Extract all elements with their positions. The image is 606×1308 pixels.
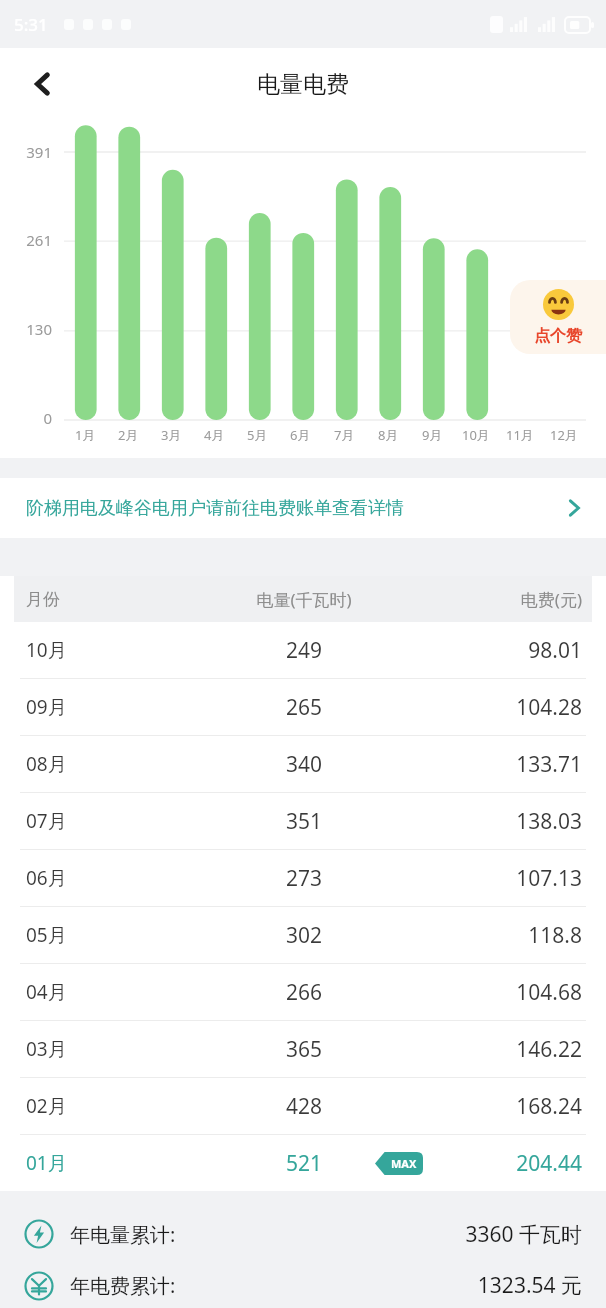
staticText: 点个赞 <box>534 326 582 346</box>
staticText: 电量电费 <box>257 70 349 99</box>
staticText: 521 <box>286 1149 323 1178</box>
staticText: 3360 千瓦时 <box>176 1220 582 1249</box>
staticText: 02月 <box>26 1093 197 1119</box>
button[interactable]: 阶梯用电及峰谷电用户请前往电费账单查看详情 <box>0 478 606 538</box>
staticText: 08月 <box>26 751 197 777</box>
staticText: 365 <box>286 1035 323 1064</box>
button[interactable]: 04月 <box>0 964 606 1020</box>
staticText: 351 <box>286 807 323 836</box>
staticText: 5:31 <box>14 13 48 36</box>
staticText: 7月 <box>334 426 355 444</box>
staticText: 03月 <box>26 1036 197 1062</box>
button[interactable]: 点个赞 <box>510 280 606 354</box>
staticText: 10月 <box>462 426 490 444</box>
staticText: 146.22 <box>411 1035 582 1064</box>
staticText: 104.68 <box>411 978 582 1007</box>
staticText: 阶梯用电及峰谷电用户请前往电费账单查看详情 <box>26 497 564 520</box>
staticText: 204.44 <box>411 1149 582 1178</box>
staticText: 6月 <box>290 426 311 444</box>
staticText: 07月 <box>26 808 197 834</box>
staticText: 273 <box>286 864 323 893</box>
staticText: 302 <box>286 921 323 950</box>
button[interactable]: 02月 <box>0 1078 606 1134</box>
staticText: 电费(元) <box>411 588 582 611</box>
staticText: 265 <box>286 693 323 722</box>
staticText: 12月 <box>550 426 578 444</box>
staticText: 9月 <box>422 426 443 444</box>
staticText: 133.71 <box>411 750 582 779</box>
staticText: 4月 <box>204 426 225 444</box>
staticText: 11月 <box>506 426 534 444</box>
staticText: 10月 <box>26 637 197 663</box>
staticText: 261 <box>6 230 52 250</box>
button[interactable]: 01月 <box>0 1135 606 1191</box>
staticText: 电量(千瓦时) <box>197 588 411 611</box>
staticText: 09月 <box>26 694 197 720</box>
staticText: MAX <box>391 1156 417 1171</box>
staticText: 0 <box>6 408 52 428</box>
staticText: 98.01 <box>411 636 582 665</box>
staticText: 428 <box>286 1092 323 1121</box>
button[interactable]: 08月 <box>0 736 606 792</box>
staticText: 3月 <box>161 426 182 444</box>
button[interactable]: 03月 <box>0 1021 606 1077</box>
staticText: 年电费累计: <box>70 1272 176 1299</box>
staticText: 104.28 <box>411 693 582 722</box>
staticText: 06月 <box>26 865 197 891</box>
staticText: 01月 <box>26 1150 197 1176</box>
button[interactable]: 05月 <box>0 907 606 963</box>
staticText: 130 <box>6 319 52 339</box>
staticText: 8月 <box>378 426 399 444</box>
staticText: 1323.54 元 <box>176 1271 582 1300</box>
button[interactable]: Back <box>20 61 66 107</box>
staticText: 05月 <box>26 922 197 948</box>
staticText: 5月 <box>247 426 268 444</box>
staticText: 1月 <box>75 426 96 444</box>
button[interactable]: 09月 <box>0 679 606 735</box>
staticText: 249 <box>286 636 323 665</box>
staticText: 118.8 <box>411 921 582 950</box>
staticText: 月份 <box>26 589 197 610</box>
staticText: 107.13 <box>411 864 582 893</box>
button[interactable]: 06月 <box>0 850 606 906</box>
staticText: 138.03 <box>411 807 582 836</box>
staticText: 年电量累计: <box>70 1221 176 1248</box>
button[interactable]: 10月 <box>0 622 606 678</box>
button[interactable]: 07月 <box>0 793 606 849</box>
staticText: 340 <box>286 750 323 779</box>
staticText: 04月 <box>26 979 197 1005</box>
staticText: 266 <box>286 978 323 1007</box>
staticText: 168.24 <box>411 1092 582 1121</box>
staticText: 391 <box>6 142 52 162</box>
staticText: 2月 <box>118 426 139 444</box>
